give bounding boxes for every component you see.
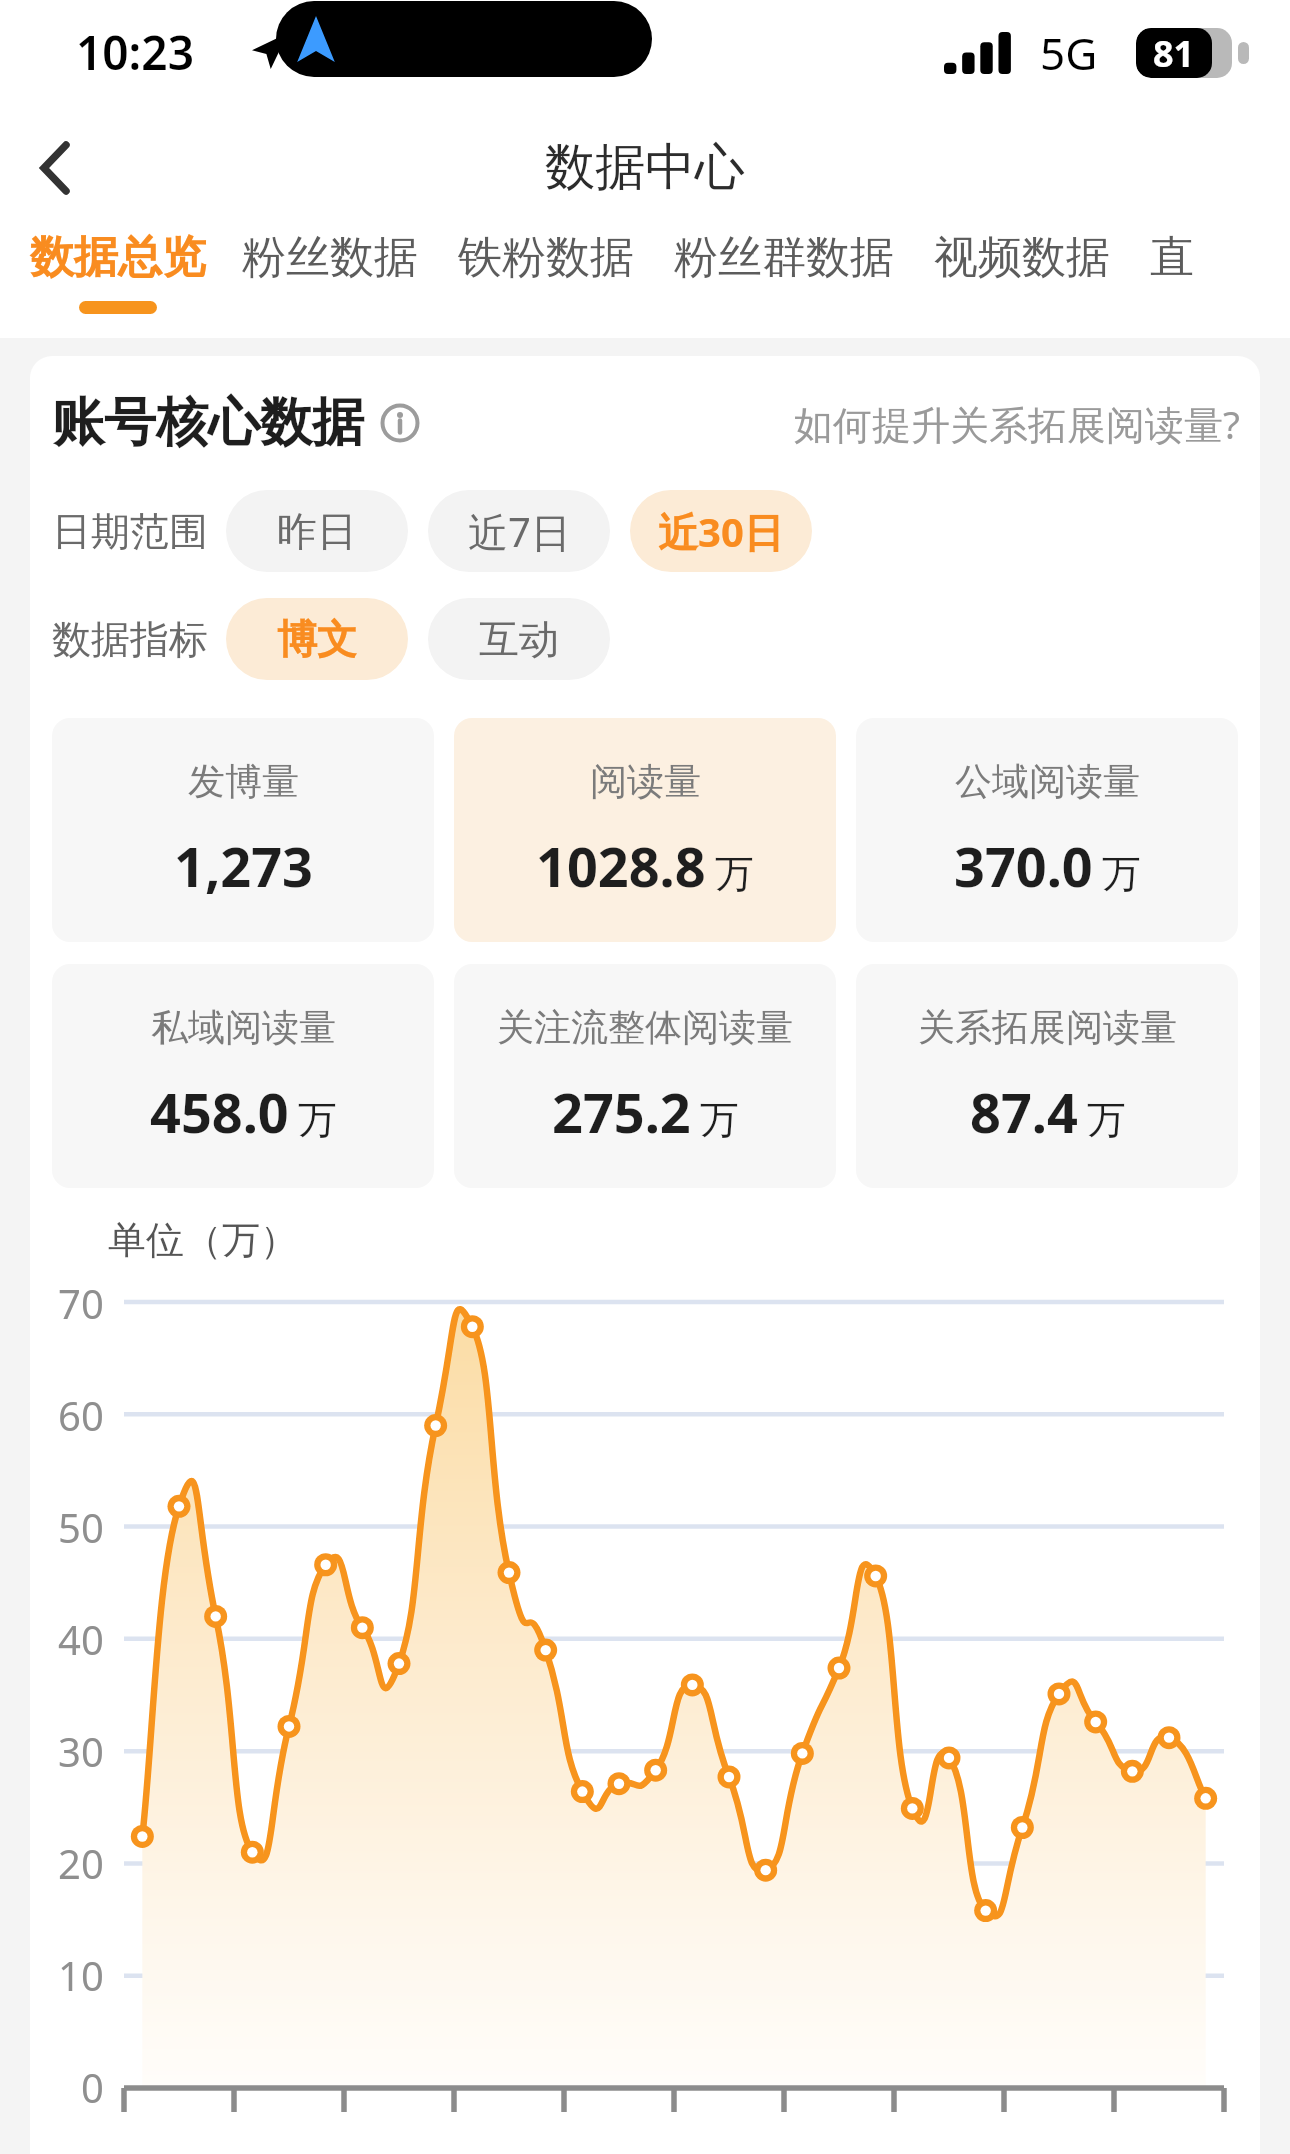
staticText: 近7日 <box>468 504 571 559</box>
staticText: 日期范围 <box>52 507 208 556</box>
staticText: 关注流整体阅读量 <box>497 1004 793 1051</box>
staticText: 458.0 <box>150 1075 289 1149</box>
button[interactable]: 铁粉数据 <box>458 230 674 301</box>
button[interactable]: 关注流整体阅读量 <box>454 964 836 1188</box>
button[interactable]: 私域阅读量 <box>52 964 434 1188</box>
staticText: 博文 <box>277 614 357 664</box>
staticText: 万 <box>298 1095 337 1144</box>
staticText: 直 <box>1150 230 1194 285</box>
staticText: 公域阅读量 <box>955 758 1140 805</box>
staticText: 60 <box>58 1388 104 1442</box>
staticText: 0 <box>81 2060 104 2114</box>
button[interactable]: 发博量 <box>52 718 434 942</box>
button[interactable]: 关系拓展阅读量 <box>856 964 1238 1188</box>
button[interactable]: 昨日 <box>226 490 408 572</box>
staticText: 1028.8 <box>536 829 706 903</box>
staticText: 275.2 <box>552 1075 691 1149</box>
staticText: 万 <box>1087 1095 1126 1144</box>
staticText: 昨日 <box>277 506 357 556</box>
staticText: 数据指标 <box>52 615 208 664</box>
staticText: 粉丝数据 <box>242 230 418 285</box>
button[interactable]: Back <box>0 113 110 223</box>
staticText: 万 <box>715 849 754 898</box>
staticText: 30 <box>58 1724 104 1778</box>
button[interactable]: 公域阅读量 <box>856 718 1238 942</box>
staticText: 50 <box>58 1500 104 1554</box>
staticText: 20 <box>58 1836 104 1890</box>
button[interactable]: 直 <box>1150 230 1234 301</box>
button[interactable]: 近30日 <box>630 490 812 572</box>
button[interactable]: 粉丝数据 <box>242 230 458 301</box>
staticText: 万 <box>700 1095 739 1144</box>
staticText: 1,273 <box>174 829 313 903</box>
staticText: 关系拓展阅读量 <box>918 1004 1177 1051</box>
staticText: 70 <box>58 1276 104 1330</box>
staticText: 10 <box>58 1948 104 2002</box>
staticText: 发博量 <box>188 758 299 805</box>
button[interactable]: 互动 <box>428 598 610 680</box>
staticText: 铁粉数据 <box>458 230 634 285</box>
button[interactable]: 视频数据 <box>934 230 1150 301</box>
staticText: 视频数据 <box>934 230 1110 285</box>
button[interactable]: 粉丝群数据 <box>674 230 934 301</box>
button[interactable]: Info <box>378 401 422 445</box>
button[interactable]: 如何提升关系拓展阅读量? <box>794 397 1240 450</box>
staticText: 数据中心 <box>545 136 745 199</box>
staticText: 40 <box>58 1612 104 1666</box>
staticText: 互动 <box>479 614 559 664</box>
button[interactable]: 阅读量 <box>454 718 836 942</box>
staticText: 10:23 <box>76 21 194 84</box>
staticText: 87.4 <box>970 1075 1078 1149</box>
staticText: 万 <box>1102 849 1141 898</box>
staticText: 账号核心数据 <box>52 390 364 456</box>
staticText: 5G <box>1040 23 1098 83</box>
staticText: 阅读量 <box>590 758 701 805</box>
staticText: 81 <box>1153 29 1195 78</box>
staticText: 私域阅读量 <box>151 1004 336 1051</box>
staticText: 370.0 <box>954 829 1093 903</box>
staticText: 近30日 <box>658 504 784 559</box>
button[interactable]: 博文 <box>226 598 408 680</box>
staticText: 单位（万） <box>108 1216 298 1264</box>
button[interactable]: 数据总览 <box>30 230 242 314</box>
button[interactable]: 近7日 <box>428 490 610 572</box>
staticText: 粉丝群数据 <box>674 230 894 285</box>
staticText: 数据总览 <box>30 230 206 285</box>
